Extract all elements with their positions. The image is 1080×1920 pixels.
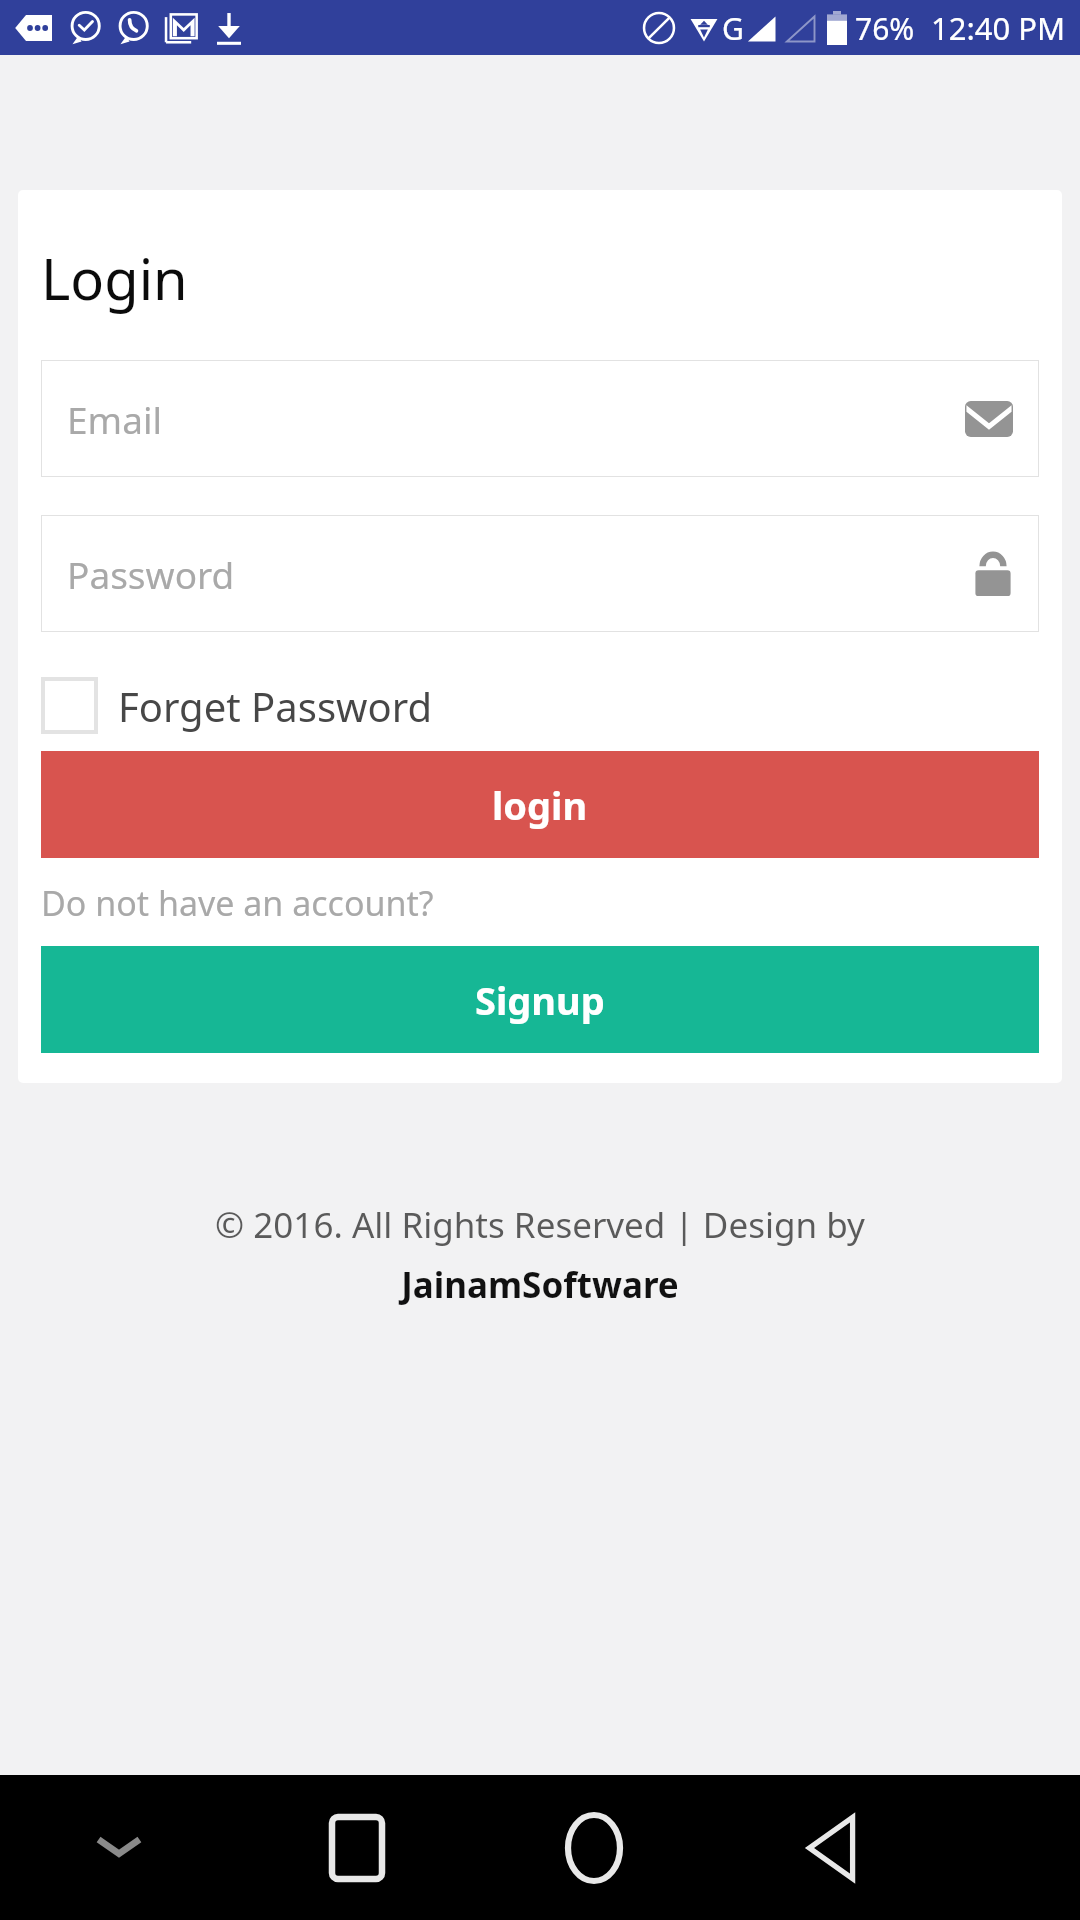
- button[interactable]: Hide keyboard: [0, 1775, 238, 1920]
- staticText: 76%: [855, 8, 915, 49]
- staticText: Password: [67, 549, 973, 599]
- button[interactable]: Signup: [41, 946, 1039, 1053]
- staticText: JainamSoftware: [401, 1261, 679, 1309]
- button[interactable]: Email: [41, 360, 1039, 477]
- staticText: login: [492, 779, 588, 831]
- staticText: Do not have an account?: [41, 880, 434, 926]
- staticText: Login: [41, 240, 188, 316]
- button[interactable]: Password: [41, 515, 1039, 632]
- button[interactable]: login: [41, 751, 1039, 858]
- staticText: © 2016. All Rights Reserved | Design by: [215, 1201, 865, 1249]
- button[interactable]: Back: [712, 1775, 949, 1920]
- staticText: Forget Password: [118, 679, 432, 733]
- staticText: G: [722, 8, 744, 49]
- staticText: Signup: [475, 974, 605, 1026]
- button[interactable]: Home: [475, 1775, 712, 1920]
- staticText: 12:40 PM: [931, 7, 1066, 49]
- button[interactable]: Recent apps: [238, 1775, 475, 1920]
- button[interactable]: Forget Password: [41, 677, 432, 734]
- staticText: Email: [67, 394, 965, 444]
